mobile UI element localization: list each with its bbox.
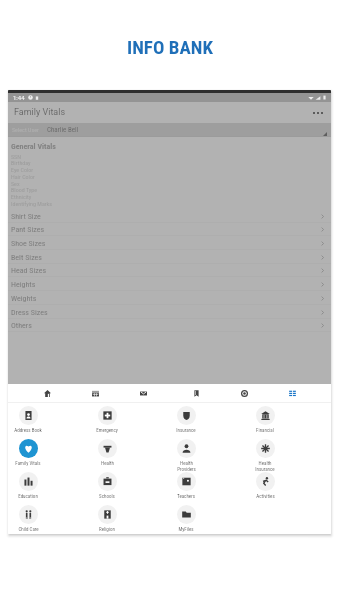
button[interactable]: Weights xyxy=(8,291,331,305)
staticText: Education xyxy=(18,493,38,499)
staticText: INFO BANK xyxy=(127,36,213,58)
button[interactable]: Insurance xyxy=(160,406,212,433)
staticText: MyFiles xyxy=(178,526,194,532)
staticText: Child Care xyxy=(18,526,39,532)
staticText: Insurance xyxy=(176,427,196,433)
button[interactable]: Financial xyxy=(239,406,291,433)
staticText: Shoe Sizes xyxy=(11,239,46,248)
button[interactable]: Pant Sizes xyxy=(8,222,331,236)
staticText: 1:44 xyxy=(13,94,25,101)
button[interactable]: MyFiles xyxy=(160,505,212,532)
staticText: Charlie Bell xyxy=(47,126,79,134)
staticText: Belt Sizes xyxy=(11,253,42,262)
button[interactable]: Shoe Sizes xyxy=(8,236,331,250)
staticText: Financial xyxy=(256,427,274,433)
staticText: Schools xyxy=(99,493,115,499)
staticText: Religion xyxy=(99,526,115,532)
staticText: Family Vitals xyxy=(14,107,66,118)
button[interactable]: Belt Sizes xyxy=(8,250,331,264)
staticText: Sex xyxy=(11,180,20,187)
button[interactable]: Teachers xyxy=(160,472,212,499)
staticText: Others xyxy=(11,321,32,330)
button[interactable]: Health Providers xyxy=(160,439,212,472)
button[interactable]: Activities xyxy=(239,472,291,499)
button[interactable]: Schools xyxy=(81,472,133,499)
staticText: Heights xyxy=(11,280,36,289)
button[interactable]: Dress Sizes xyxy=(8,305,331,319)
staticText: Health xyxy=(101,460,114,466)
staticText: Blood Type xyxy=(11,186,38,193)
button[interactable]: Mail xyxy=(130,385,156,401)
staticText: Hair Color xyxy=(11,173,35,180)
staticText: Select User xyxy=(12,126,39,133)
staticText: Family Vitals xyxy=(15,460,41,466)
staticText: Emergency xyxy=(96,427,118,433)
staticText: Address Book xyxy=(14,427,42,433)
button[interactable]: Emergency xyxy=(81,406,133,433)
button[interactable]: Home xyxy=(34,385,60,401)
staticText: SSN xyxy=(11,153,21,160)
staticText: Weights xyxy=(11,294,37,303)
staticText: Health Providers xyxy=(177,460,196,472)
button[interactable]: Calendar xyxy=(82,385,108,401)
button[interactable]: Notes xyxy=(183,385,209,401)
button[interactable]: Family Vitals xyxy=(8,439,54,466)
staticText: General Vitals xyxy=(11,142,56,151)
button[interactable]: Money xyxy=(231,385,257,401)
button[interactable]: Head Sizes xyxy=(8,263,331,277)
staticText: Pant Sizes xyxy=(11,225,45,234)
button[interactable]: Heights xyxy=(8,277,331,291)
staticText: Health Insurance xyxy=(255,460,275,472)
button[interactable]: Health xyxy=(81,439,133,466)
staticText: Teachers xyxy=(177,493,195,499)
button[interactable]: More options xyxy=(308,108,328,118)
button[interactable]: Child Care xyxy=(8,505,54,532)
button[interactable]: Education xyxy=(8,472,54,499)
button[interactable]: Others xyxy=(8,318,331,332)
staticText: Head Sizes xyxy=(11,266,47,275)
button[interactable]: Select User xyxy=(8,123,331,136)
staticText: Activities xyxy=(256,493,275,499)
staticText: Eye Color xyxy=(11,166,34,173)
staticText: Ethnicity xyxy=(11,193,32,200)
button[interactable]: Health Insurance xyxy=(239,439,291,472)
staticText: Dress Sizes xyxy=(11,308,48,317)
staticText: Birthday xyxy=(11,159,31,166)
button[interactable]: Shirt Size xyxy=(8,209,331,223)
button[interactable]: Grid xyxy=(279,385,305,401)
staticText: Identifying Marks xyxy=(11,200,53,207)
button[interactable]: Religion xyxy=(81,505,133,532)
staticText: Shirt Size xyxy=(11,212,41,221)
button[interactable]: Address Book xyxy=(8,406,54,433)
